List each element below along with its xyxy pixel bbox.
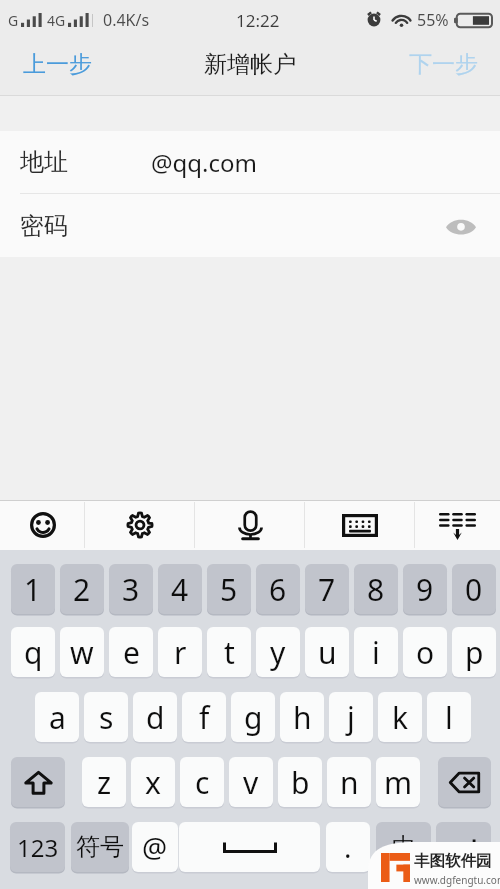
- button[interactable]: w: [60, 627, 104, 677]
- button[interactable]: d: [133, 692, 177, 742]
- button[interactable]: u: [305, 627, 349, 677]
- staticText: w: [70, 632, 94, 673]
- staticText: .: [344, 828, 352, 866]
- staticText: 密码: [20, 211, 68, 241]
- button[interactable]: q: [11, 627, 55, 677]
- staticText: 4G: [47, 11, 66, 30]
- button[interactable]: z: [82, 757, 126, 807]
- staticText: G: [8, 11, 19, 30]
- button[interactable]: Voice input: [195, 500, 305, 550]
- button[interactable]: Hide keyboard: [415, 500, 500, 550]
- button[interactable]: Settings: [85, 500, 195, 550]
- button[interactable]: 8: [354, 564, 398, 614]
- button[interactable]: @: [132, 822, 178, 872]
- button[interactable]: 0: [452, 564, 496, 614]
- button[interactable]: 5: [207, 564, 251, 614]
- button[interactable]: 下一步: [395, 40, 500, 96]
- staticText: www.dgfengtu.com: [414, 873, 500, 887]
- staticText: l: [445, 697, 453, 738]
- staticText: 下一步: [409, 50, 478, 79]
- button[interactable]: Emoji: [0, 500, 85, 550]
- button[interactable]: 密码: [0, 194, 500, 257]
- staticText: 4: [171, 569, 189, 610]
- button[interactable]: 3: [109, 564, 153, 614]
- button[interactable]: r: [158, 627, 202, 677]
- staticText: 符号: [76, 832, 124, 862]
- button[interactable]: i: [354, 627, 398, 677]
- staticText: g: [244, 697, 263, 738]
- button[interactable]: 4: [158, 564, 202, 614]
- staticText: p: [465, 632, 484, 673]
- staticText: 0.4K/s: [103, 9, 150, 31]
- staticText: 丰图软件园: [414, 851, 492, 871]
- button[interactable]: Backspace: [438, 757, 491, 807]
- staticText: r: [174, 632, 187, 673]
- button[interactable]: .: [326, 822, 370, 872]
- button[interactable]: 6: [256, 564, 300, 614]
- button[interactable]: p: [452, 627, 496, 677]
- staticText: j: [347, 697, 355, 738]
- button[interactable]: 123: [10, 822, 65, 872]
- button[interactable]: y: [256, 627, 300, 677]
- button[interactable]: Keyboard layout: [305, 500, 415, 550]
- button[interactable]: 中: [376, 822, 431, 872]
- button[interactable]: 地址: [0, 131, 500, 193]
- staticText: 0: [465, 569, 483, 610]
- button[interactable]: x: [131, 757, 175, 807]
- staticText: z: [97, 762, 112, 803]
- staticText: 1: [24, 569, 42, 610]
- button[interactable]: m: [376, 757, 420, 807]
- staticText: f: [199, 697, 210, 738]
- staticText: c: [195, 762, 210, 803]
- staticText: n: [340, 762, 359, 803]
- staticText: v: [243, 762, 259, 803]
- staticText: 2: [73, 569, 91, 610]
- button[interactable]: f: [182, 692, 226, 742]
- button[interactable]: 符号: [71, 822, 129, 872]
- button[interactable]: h: [280, 692, 324, 742]
- staticText: 123: [17, 831, 59, 864]
- button[interactable]: Show password: [434, 203, 488, 249]
- button[interactable]: Enter: [436, 822, 491, 872]
- button[interactable]: 7: [305, 564, 349, 614]
- staticText: a: [49, 697, 66, 738]
- button[interactable]: l: [427, 692, 471, 742]
- button[interactable]: c: [180, 757, 224, 807]
- staticText: d: [146, 697, 165, 738]
- button[interactable]: b: [278, 757, 322, 807]
- button[interactable]: t: [207, 627, 251, 677]
- button[interactable]: 上一步: [0, 40, 106, 96]
- button[interactable]: g: [231, 692, 275, 742]
- staticText: e: [123, 632, 140, 673]
- staticText: 55%: [417, 9, 449, 31]
- button[interactable]: o: [403, 627, 447, 677]
- button[interactable]: s: [84, 692, 128, 742]
- staticText: 9: [416, 569, 434, 610]
- staticText: i: [372, 632, 380, 673]
- staticText: s: [99, 697, 114, 738]
- staticText: b: [291, 762, 310, 803]
- button[interactable]: j: [329, 692, 373, 742]
- staticText: 12:22: [236, 9, 280, 32]
- button[interactable]: v: [229, 757, 273, 807]
- button[interactable]: Shift: [11, 757, 65, 807]
- staticText: k: [392, 697, 409, 738]
- staticText: 8: [367, 569, 385, 610]
- button[interactable]: 2: [60, 564, 104, 614]
- staticText: o: [416, 632, 435, 673]
- button[interactable]: k: [378, 692, 422, 742]
- button[interactable]: a: [35, 692, 79, 742]
- button[interactable]: n: [327, 757, 371, 807]
- staticText: @qq.com: [151, 146, 258, 179]
- button[interactable]: e: [109, 627, 153, 677]
- staticText: 6: [269, 569, 287, 610]
- staticText: 3: [122, 569, 140, 610]
- button[interactable]: Space: [179, 822, 320, 872]
- button[interactable]: 9: [403, 564, 447, 614]
- staticText: m: [384, 762, 413, 803]
- staticText: 7: [318, 569, 336, 610]
- button[interactable]: 1: [11, 564, 55, 614]
- staticText: h: [293, 697, 312, 738]
- staticText: @: [142, 828, 168, 866]
- staticText: 中: [392, 832, 416, 862]
